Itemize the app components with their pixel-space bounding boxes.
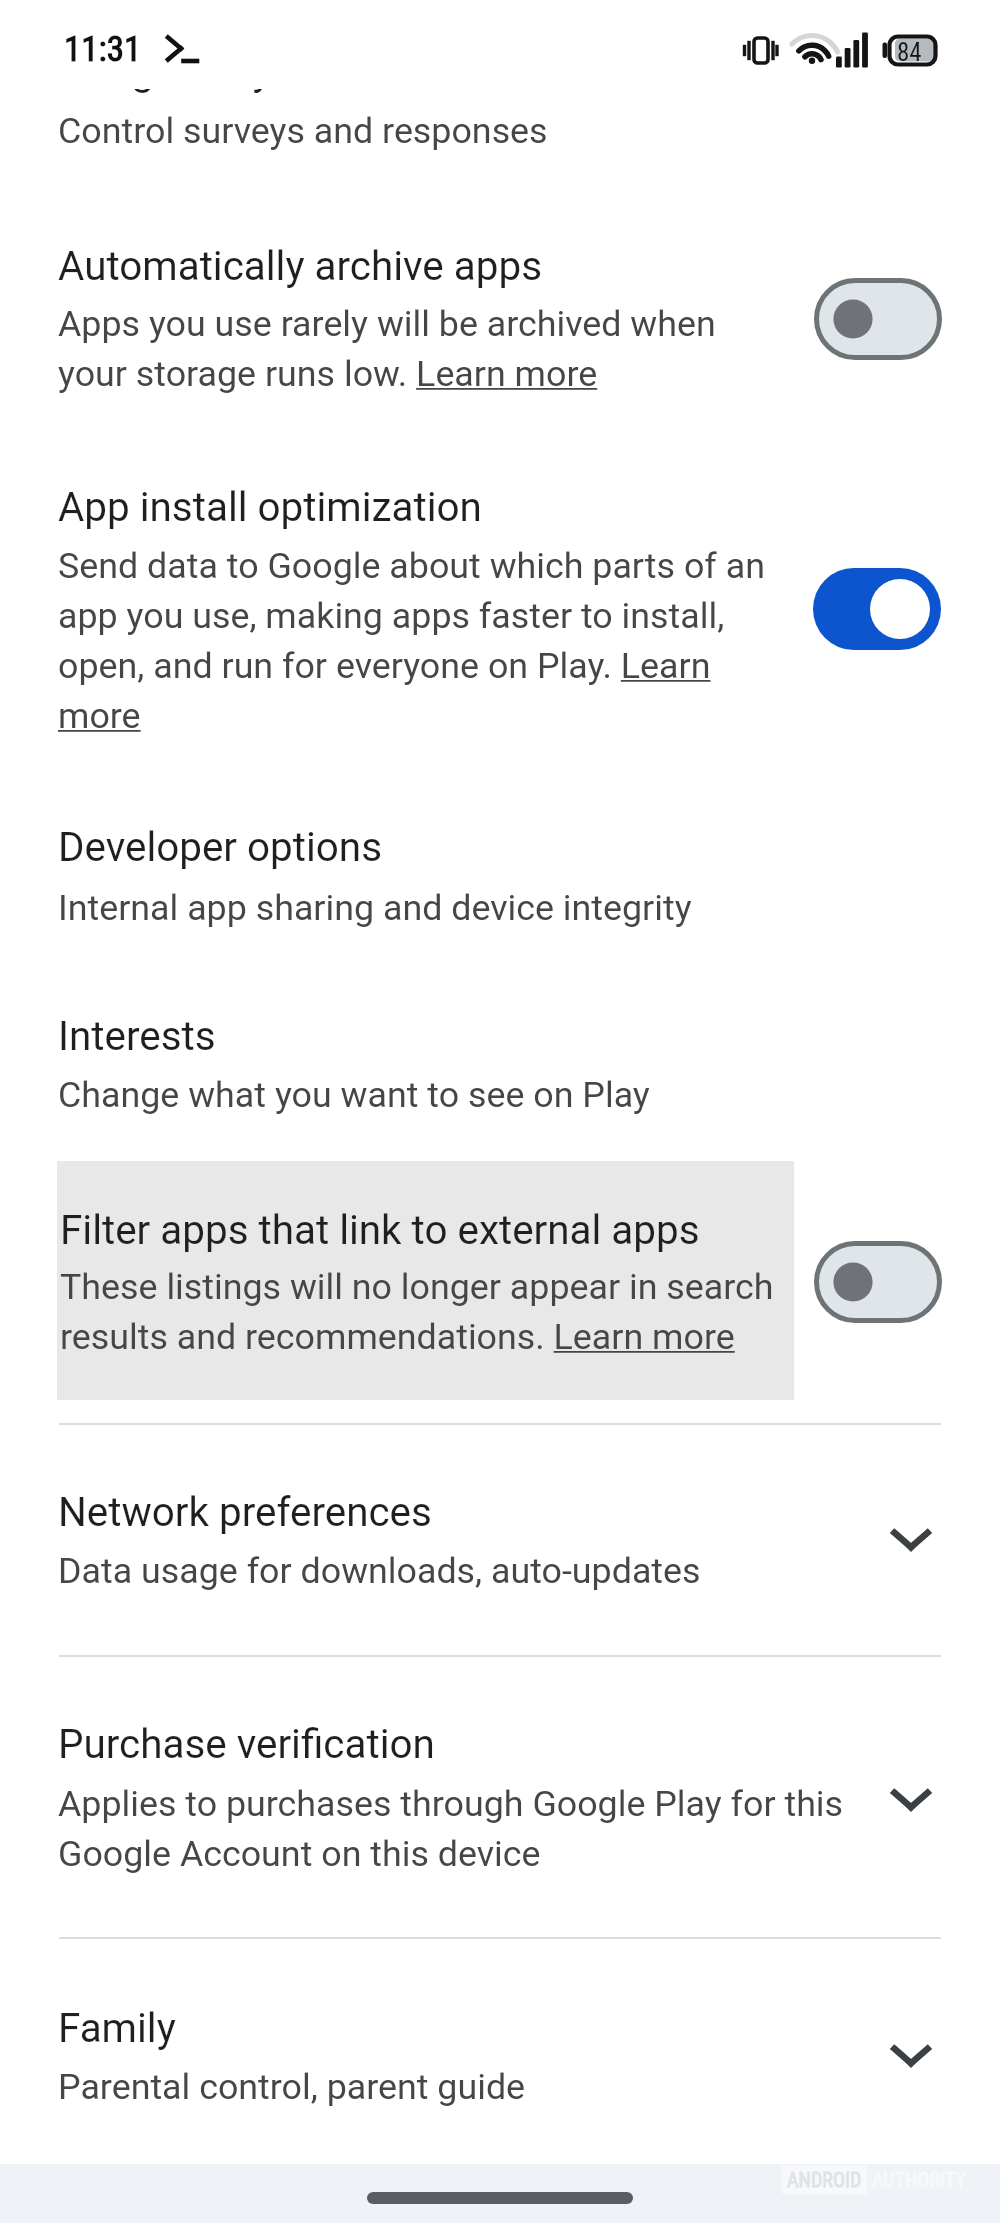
staticText: Applies to purchases through Google Play… xyxy=(58,1783,844,1825)
button[interactable]: Filter apps that link to external apps, … xyxy=(814,1241,942,1323)
staticText: Network preferences xyxy=(58,1489,432,1536)
staticText: your storage runs low. Learn more xyxy=(58,353,598,395)
button[interactable]: Automatically archive apps, off xyxy=(814,278,942,360)
staticText: These listings will no longer appear in … xyxy=(60,1266,774,1308)
staticText: more xyxy=(58,695,141,737)
staticText: Send data to Google about which parts of… xyxy=(58,545,765,587)
staticText: results and recommendations. Learn more xyxy=(60,1316,735,1358)
staticText: AUTHORITY xyxy=(872,2168,966,2191)
staticText: Family xyxy=(58,2005,176,2052)
staticText: 84 xyxy=(897,38,922,67)
button[interactable]: Interests xyxy=(0,975,1000,1145)
staticText: 11:31 xyxy=(64,29,142,70)
other: Wi-Fi xyxy=(786,28,838,68)
button[interactable]: Filter apps that link to external apps xyxy=(0,1161,1000,1400)
button[interactable]: Automatically archive apps xyxy=(0,200,1000,420)
staticText: open, and run for everyone on Play. Lear… xyxy=(58,645,711,687)
staticText: Parental control, parent guide xyxy=(58,2066,526,2108)
staticText: Change what you want to see on Play xyxy=(58,1074,650,1116)
staticText: Internal app sharing and device integrit… xyxy=(58,887,692,929)
staticText: App install optimization xyxy=(58,484,482,531)
other: Vibrate mode xyxy=(743,36,778,64)
other: Developer shell xyxy=(166,36,199,65)
other: Mobile signal xyxy=(836,32,869,68)
staticText: Google Account on this device xyxy=(58,1833,541,1875)
staticText: Filter apps that link to external apps xyxy=(60,1207,700,1254)
button[interactable]: Developer options xyxy=(0,790,1000,960)
staticText: ANDROID xyxy=(787,2168,862,2191)
staticText: Automatically archive apps xyxy=(58,243,542,290)
button[interactable]: Google Play xyxy=(0,0,1000,163)
button[interactable]: App install optimization, on xyxy=(813,568,941,650)
button[interactable]: App install optimization xyxy=(0,440,1000,770)
staticText: Data usage for downloads, auto-updates xyxy=(58,1550,701,1592)
button[interactable]: Network preferences xyxy=(0,1426,1000,1655)
staticText: app you use, making apps faster to insta… xyxy=(58,595,725,637)
button[interactable]: Purchase verification xyxy=(0,1657,1000,1937)
staticText: Purchase verification xyxy=(58,1721,435,1768)
staticText: Apps you use rarely will be archived whe… xyxy=(58,303,716,345)
staticText: Control surveys and responses xyxy=(58,110,548,152)
button[interactable]: Family xyxy=(0,1939,1000,2163)
staticText: Developer options xyxy=(58,824,382,871)
staticText: Google Play xyxy=(58,48,272,95)
staticText: Interests xyxy=(58,1013,216,1060)
button[interactable]: Home xyxy=(367,2192,633,2204)
